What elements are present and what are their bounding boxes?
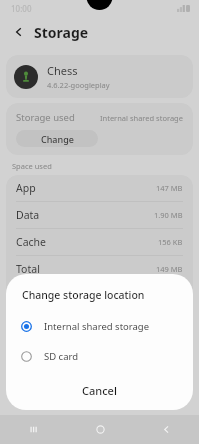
staticText: Storage used	[16, 111, 75, 124]
staticText: Cancel	[82, 383, 117, 398]
staticText: 4.6.22-googleplay	[47, 80, 110, 90]
button[interactable]: Data	[6, 202, 193, 229]
staticText: 10:00	[11, 3, 32, 14]
button[interactable]: Home	[67, 415, 133, 444]
staticText: Total	[16, 262, 40, 276]
button[interactable]: Chess	[6, 55, 193, 98]
staticText: Space used	[12, 161, 52, 171]
staticText: 156 KB	[158, 237, 183, 247]
button[interactable]: Change	[16, 130, 98, 147]
button[interactable]: Cancel	[6, 378, 193, 402]
staticText: Change storage location	[22, 288, 145, 302]
button[interactable]: Internal shared storage	[6, 314, 193, 339]
staticText: Internal shared storage	[44, 320, 150, 333]
button[interactable]: SD card	[6, 344, 193, 369]
staticText: 147 MB	[156, 183, 183, 193]
button[interactable]: Recents	[0, 415, 67, 444]
staticText: Chess	[47, 63, 78, 78]
button[interactable]: App	[6, 175, 193, 202]
staticText: SD card	[44, 350, 79, 363]
button[interactable]: Cache	[6, 229, 193, 256]
staticText: 149 MB	[156, 264, 183, 274]
button[interactable]: Back	[8, 21, 30, 43]
staticText: Internal shared storage	[100, 113, 183, 123]
staticText: Cache	[16, 235, 46, 249]
button[interactable]: Total	[6, 256, 193, 282]
staticText: App	[16, 181, 36, 195]
button[interactable]	[6, 282, 193, 308]
staticText: Data	[16, 208, 40, 222]
staticText: 1.90 MB	[154, 210, 183, 220]
staticText: Storage	[34, 23, 89, 42]
staticText: Change	[41, 133, 74, 145]
